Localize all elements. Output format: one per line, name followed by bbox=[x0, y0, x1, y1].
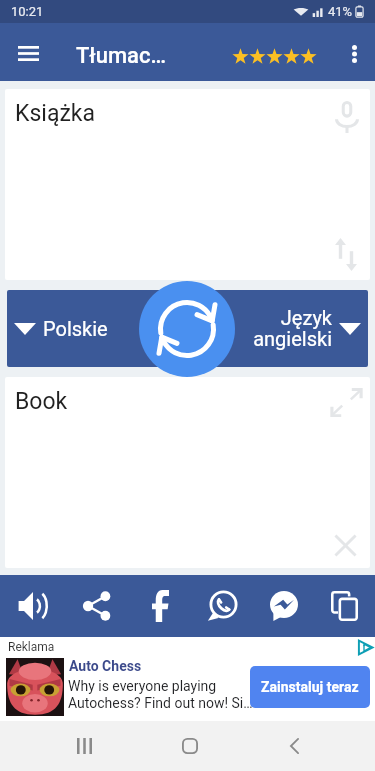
staticText: Tłumac… bbox=[76, 43, 167, 69]
button[interactable]: Home bbox=[160, 721, 220, 771]
button[interactable]: Full screen bbox=[323, 377, 370, 423]
button[interactable]: Zainstaluj teraz bbox=[250, 666, 370, 708]
button[interactable]: Speak bbox=[7, 578, 59, 634]
button[interactable]: WhatsApp bbox=[196, 578, 248, 634]
button[interactable]: Język angielski bbox=[253, 306, 361, 351]
button[interactable]: More options bbox=[332, 29, 375, 75]
staticText: Książka bbox=[15, 100, 95, 127]
staticText: Reklama bbox=[8, 640, 55, 654]
staticText: 41% bbox=[328, 4, 353, 19]
staticText: Zainstaluj teraz bbox=[261, 679, 359, 695]
button[interactable]: Rate app bbox=[232, 48, 317, 65]
button[interactable]: Back bbox=[264, 721, 324, 771]
button[interactable]: Clear bbox=[323, 522, 370, 568]
staticText: Język angielski bbox=[253, 306, 332, 351]
button[interactable]: Facebook bbox=[134, 578, 186, 634]
button[interactable]: Messenger bbox=[258, 578, 310, 634]
staticText: Why is everyone playing Autochess? Find … bbox=[68, 678, 253, 712]
staticText: Polskie bbox=[43, 317, 108, 340]
button[interactable]: Polskie bbox=[14, 317, 108, 340]
staticText: 10:21 bbox=[11, 4, 44, 19]
staticText: Auto Chess bbox=[69, 658, 142, 674]
staticText: Book bbox=[15, 388, 68, 415]
button[interactable]: Swap languages bbox=[139, 281, 235, 377]
button[interactable]: Menu bbox=[6, 29, 52, 75]
button[interactable]: Voice input bbox=[323, 89, 370, 134]
button[interactable]: Share bbox=[71, 578, 123, 634]
button[interactable]: Copy bbox=[318, 578, 370, 634]
button[interactable]: Swap text bbox=[323, 230, 370, 280]
button[interactable]: Recents bbox=[54, 721, 114, 771]
button[interactable]: Ad choices bbox=[358, 640, 373, 655]
